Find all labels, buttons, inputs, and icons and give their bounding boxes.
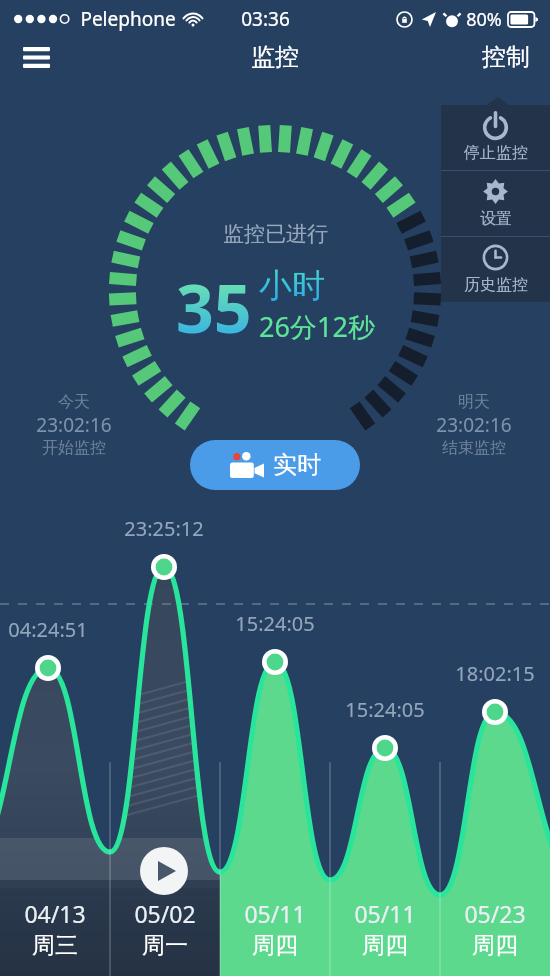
staticText: 05/02 (134, 898, 196, 929)
staticText: 控制 (482, 42, 530, 72)
staticText: 监控 (251, 42, 299, 72)
staticText: 历史监控 (464, 275, 528, 295)
staticText: 05/23 (464, 898, 526, 929)
staticText: 实时 (273, 450, 321, 480)
staticText: 18:02:15 (455, 660, 535, 687)
staticText: 周一 (142, 931, 188, 960)
staticText: 05/11 (244, 898, 306, 929)
button[interactable]: 05/02 (110, 898, 220, 960)
staticText: 监控已进行 (223, 221, 328, 247)
button[interactable]: 停止监控 (441, 105, 550, 170)
button[interactable]: 05/23 (440, 898, 550, 960)
staticText: 15:24:05 (345, 696, 425, 723)
staticText: 23:02:16 (36, 412, 112, 438)
staticText: 周三 (32, 931, 78, 960)
staticText: 26分12秒 (259, 308, 375, 345)
staticText: 小时 (259, 265, 325, 307)
button[interactable]: 设置 (441, 171, 550, 236)
button[interactable]: 实时 (190, 440, 360, 490)
staticText: 明天 (458, 392, 490, 412)
staticText: 80% (466, 7, 502, 32)
staticText: 停止监控 (464, 143, 528, 163)
staticText: 结束监控 (442, 438, 506, 458)
staticText: 23:02:16 (436, 412, 512, 438)
staticText: 23:25:12 (124, 515, 204, 542)
button[interactable]: 05/11 (220, 898, 330, 960)
staticText: 周四 (472, 931, 518, 960)
button[interactable]: Menu (14, 38, 58, 76)
staticText: 15:24:05 (235, 610, 315, 637)
staticText: Pelephone (80, 6, 176, 32)
staticText: 今天 (58, 392, 90, 412)
staticText: 03:36 (241, 6, 290, 32)
staticText: 05/11 (354, 898, 416, 929)
staticText: 周四 (252, 931, 298, 960)
button[interactable]: 04/13 (0, 898, 110, 960)
staticText: 04:24:51 (8, 616, 88, 643)
staticText: 开始监控 (42, 438, 106, 458)
button[interactable]: 历史监控 (441, 237, 550, 302)
button[interactable]: 控制 (482, 42, 530, 72)
staticText: 04/13 (24, 898, 86, 929)
staticText: 周四 (362, 931, 408, 960)
staticText: 设置 (480, 209, 512, 229)
staticText: 35 (176, 262, 252, 352)
button[interactable]: 05/11 (330, 898, 440, 960)
